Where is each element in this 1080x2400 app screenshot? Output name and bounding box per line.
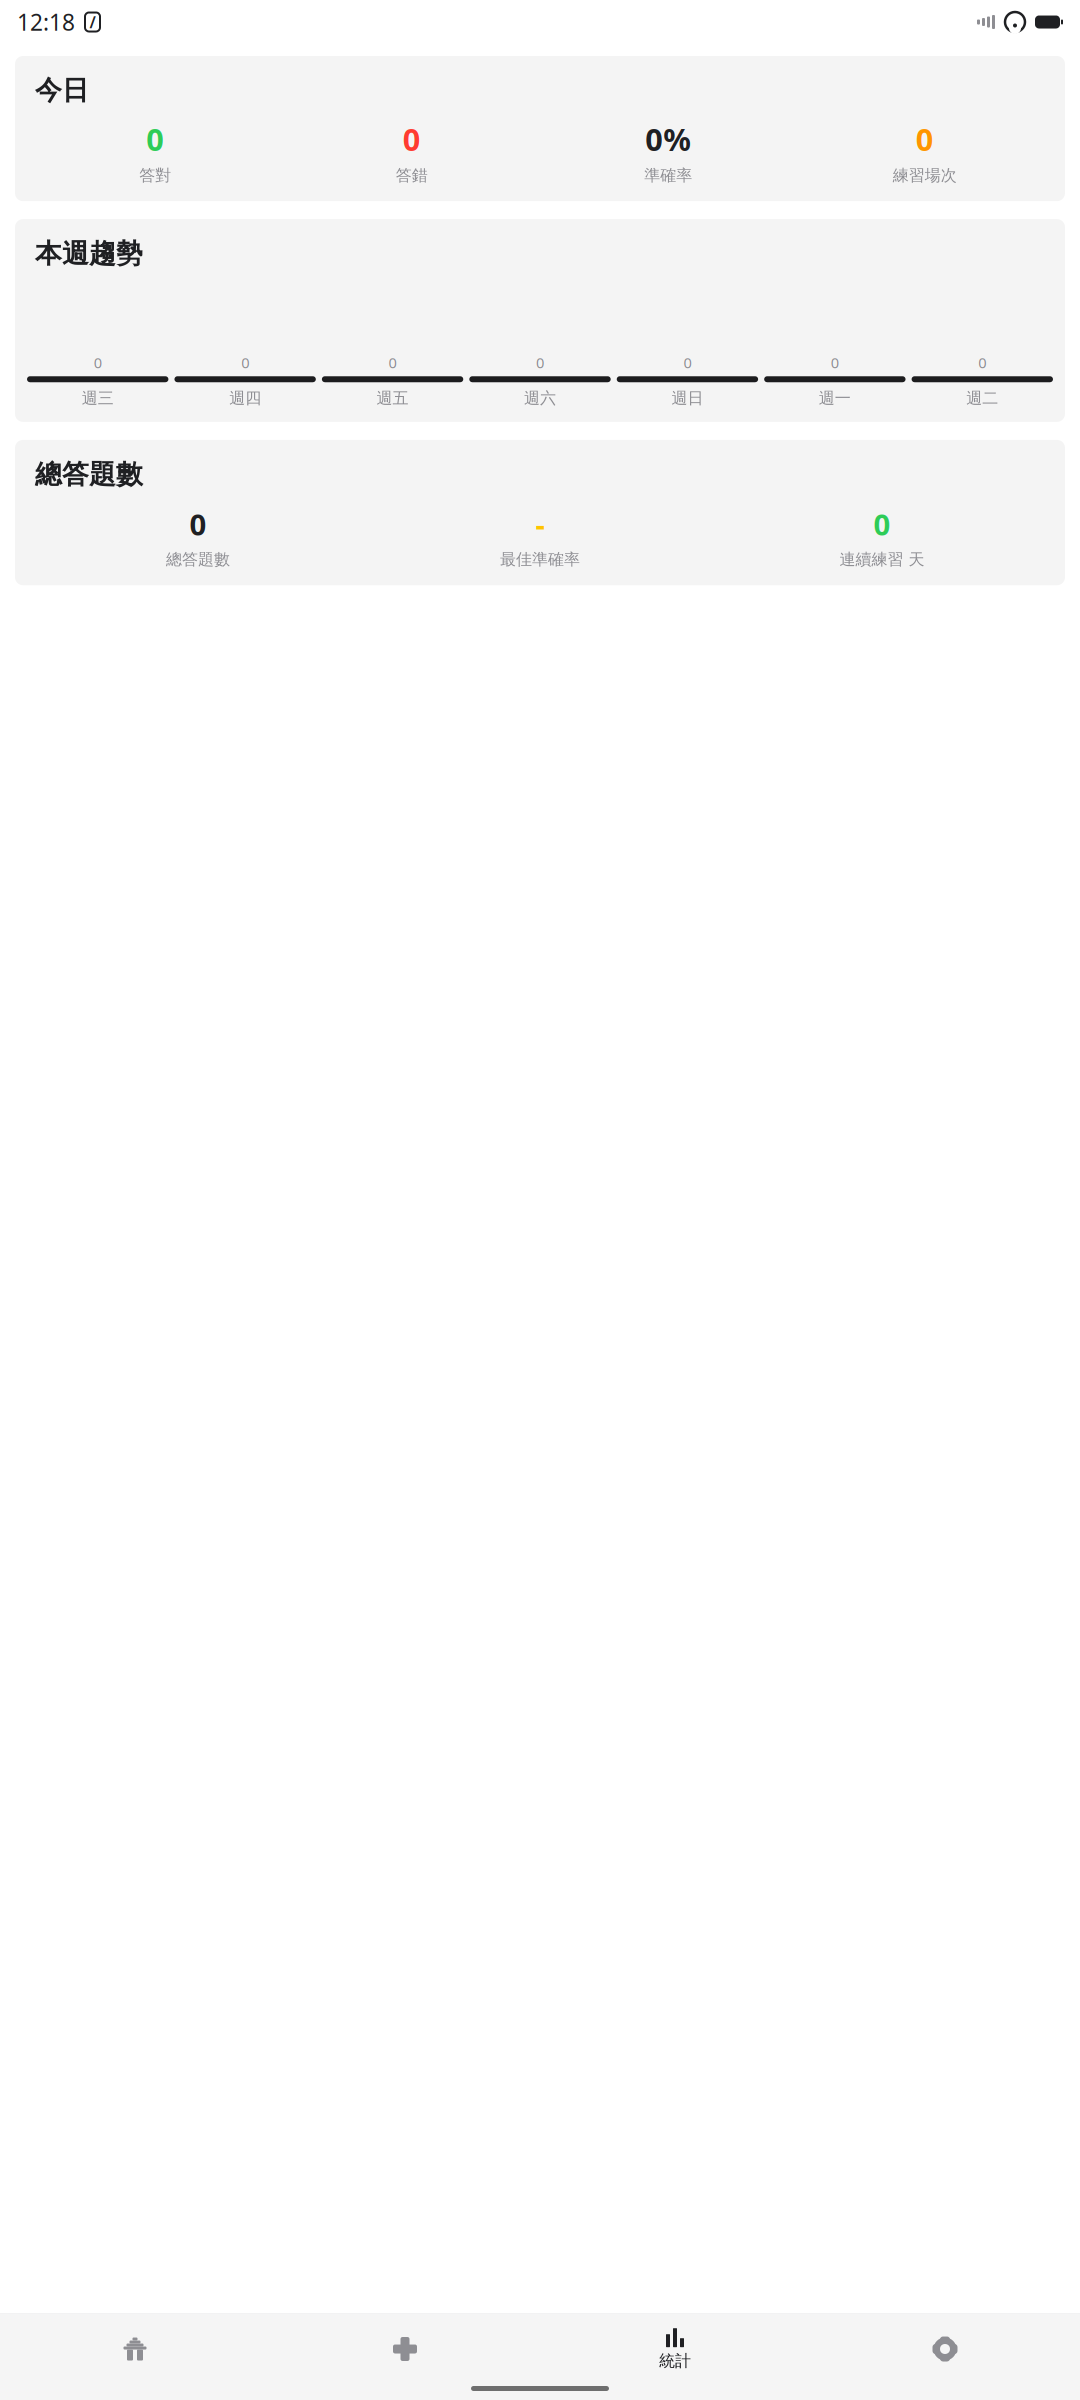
button[interactable]: 練習 <box>270 2320 540 2378</box>
staticText: 總答題數 <box>35 458 143 491</box>
staticText: 週日 <box>671 388 703 408</box>
button[interactable]: 統計 <box>540 2320 810 2378</box>
staticText: 週二 <box>966 388 998 408</box>
staticText: 今日 <box>35 74 89 107</box>
staticText: 0 <box>403 119 421 159</box>
staticText: 12:18 <box>17 7 75 37</box>
staticText: 0 <box>831 353 839 372</box>
staticText: 0 <box>94 353 102 372</box>
staticText: 最佳準確率 <box>500 550 580 569</box>
staticText: - <box>535 505 544 544</box>
staticText: 0 <box>873 505 890 544</box>
staticText: 答錯 <box>396 165 428 185</box>
staticText: 0 <box>536 353 544 372</box>
staticText: 週一 <box>819 388 851 408</box>
staticText: 本週趨勢 <box>35 237 143 270</box>
button[interactable]: 設定 <box>810 2320 1080 2378</box>
staticText: 週五 <box>377 388 409 408</box>
staticText: 週四 <box>229 388 261 408</box>
staticText: 0 <box>389 353 397 372</box>
staticText: 0 <box>241 353 249 372</box>
staticText: 0 <box>146 119 164 159</box>
staticText: 0 <box>916 119 934 159</box>
staticText: 練習場次 <box>893 165 957 185</box>
staticText: 總答題數 <box>166 550 230 569</box>
staticText: 答對 <box>139 165 171 185</box>
staticText: 0 <box>978 353 986 372</box>
button[interactable]: 首頁 <box>0 2320 270 2378</box>
staticText: 0% <box>645 119 691 159</box>
staticText: 週三 <box>82 388 114 408</box>
staticText: / <box>89 11 95 33</box>
staticText: 週六 <box>524 388 556 408</box>
staticText: 0 <box>683 353 691 372</box>
staticText: 0 <box>189 505 206 544</box>
staticText: 準確率 <box>644 165 692 185</box>
staticText: 統計 <box>659 2351 691 2371</box>
staticText: 連續練習 天 <box>839 550 924 569</box>
